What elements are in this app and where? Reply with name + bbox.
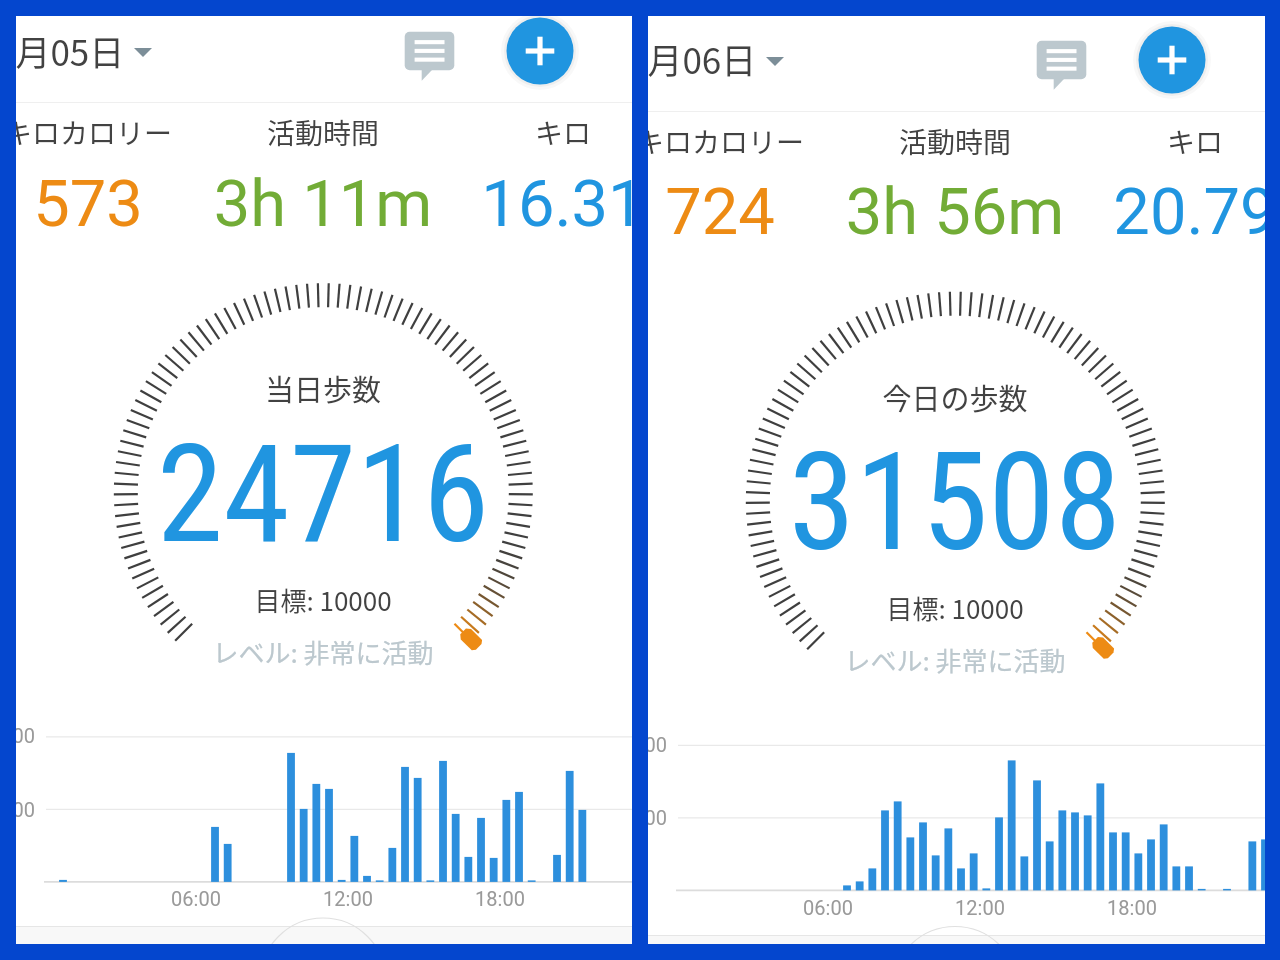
staticText: 724 xyxy=(648,174,970,272)
staticText: 活動時間 xyxy=(705,121,1205,163)
staticText: 目標: 10000 xyxy=(73,581,573,620)
staticText: 3h 56m xyxy=(705,174,1205,272)
button[interactable]: 2月05日 xyxy=(16,16,196,102)
button[interactable]: Settings xyxy=(509,926,632,944)
button[interactable] xyxy=(648,117,835,235)
staticText: キロカロリー xyxy=(648,121,970,163)
staticText: 18:00 xyxy=(250,887,632,917)
button[interactable]: Add xyxy=(500,16,580,91)
staticText: 16.31 xyxy=(313,166,632,264)
button[interactable] xyxy=(208,108,438,226)
button[interactable]: Trends xyxy=(386,926,509,944)
staticText: 今日の歩数 xyxy=(705,376,1205,420)
staticText: 31508 xyxy=(705,424,1205,626)
staticText: 573 xyxy=(16,166,338,264)
button[interactable] xyxy=(16,108,203,226)
staticText: 06:00 xyxy=(16,887,446,917)
staticText: 06:00 xyxy=(648,896,1078,926)
staticText: 2000 xyxy=(16,724,35,747)
button[interactable] xyxy=(448,108,632,226)
staticText: 1000 xyxy=(16,798,35,821)
button[interactable]: Activity xyxy=(139,926,262,944)
button[interactable]: Add record xyxy=(895,935,1018,944)
staticText: 2月05日 xyxy=(16,25,125,76)
button[interactable]: 2月06日 xyxy=(648,16,828,111)
staticText: 当日歩数 xyxy=(73,367,573,411)
button[interactable]: Add record xyxy=(262,926,385,944)
button[interactable]: Settings xyxy=(1142,935,1265,944)
button[interactable]: Home xyxy=(648,935,771,944)
staticText: キロ xyxy=(945,121,1265,163)
staticText: 12:00 xyxy=(98,887,598,917)
staticText: 18:00 xyxy=(882,896,1265,926)
button[interactable] xyxy=(1080,117,1265,235)
button[interactable]: Add xyxy=(1132,20,1212,100)
staticText: 24716 xyxy=(73,416,573,618)
staticText: 2000 xyxy=(648,733,667,756)
staticText: 活動時間 xyxy=(73,112,573,154)
staticText: キロカロリー xyxy=(16,112,338,154)
button[interactable]: Messages xyxy=(392,19,466,83)
button[interactable]: Trends xyxy=(1018,935,1141,944)
staticText: レベル: 非常に活動 xyxy=(705,641,1205,680)
staticText: 3h 11m xyxy=(73,166,573,264)
staticText: レベル: 非常に活動 xyxy=(73,633,573,672)
button[interactable]: Activity xyxy=(771,935,894,944)
staticText: 20.79 xyxy=(945,174,1265,272)
staticText: キロ xyxy=(313,112,632,154)
staticText: 12:00 xyxy=(730,896,1230,926)
button[interactable]: Home xyxy=(16,926,139,944)
staticText: 2月06日 xyxy=(648,33,757,84)
button[interactable]: Messages xyxy=(1024,28,1098,92)
staticText: 1000 xyxy=(648,806,667,829)
staticText: 目標: 10000 xyxy=(705,589,1205,628)
button[interactable] xyxy=(840,117,1070,235)
